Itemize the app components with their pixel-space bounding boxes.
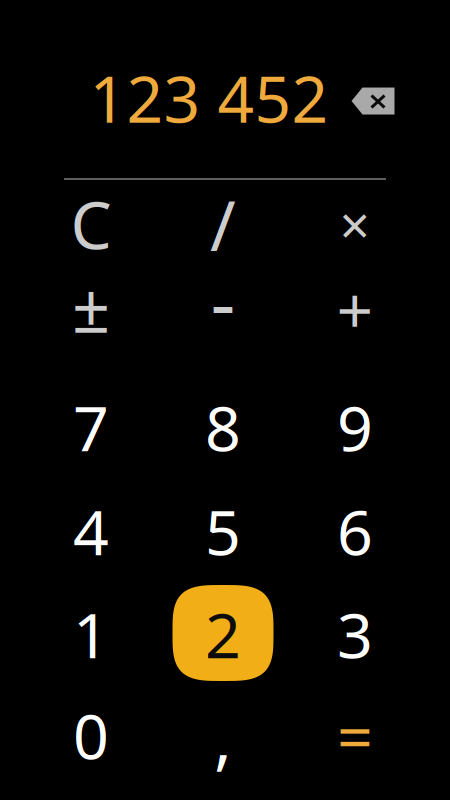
button[interactable]: 5 (157, 483, 289, 583)
button[interactable]: 9 (289, 379, 421, 479)
button[interactable]: 1 (25, 586, 157, 686)
button[interactable]: 7 (25, 379, 157, 479)
staticText: × (339, 189, 370, 259)
button[interactable]: / (157, 181, 289, 267)
button[interactable]: × (289, 181, 421, 267)
button[interactable]: , (157, 687, 289, 787)
staticText: 123 452 (89, 55, 328, 140)
staticText: 7 (73, 385, 109, 469)
button[interactable]: 3 (289, 586, 421, 686)
staticText: - (210, 250, 235, 352)
staticText: 5 (205, 489, 241, 573)
button[interactable]: = (289, 687, 421, 787)
staticText: 3 (337, 592, 373, 676)
staticText: C (70, 181, 111, 267)
button[interactable]: 2 (157, 586, 289, 686)
staticText: 1 (73, 592, 109, 676)
staticText: + (336, 266, 373, 351)
staticText: 8 (205, 385, 241, 469)
button[interactable]: 8 (157, 379, 289, 479)
staticText: 9 (337, 385, 373, 469)
button[interactable]: 4 (25, 483, 157, 583)
button[interactable]: 0 (25, 687, 157, 787)
staticText: 6 (337, 489, 373, 573)
staticText: = (337, 694, 373, 778)
staticText: , (214, 693, 232, 781)
staticText: 0 (73, 693, 109, 777)
staticText: ± (72, 263, 110, 351)
button[interactable]: 6 (289, 483, 421, 583)
button[interactable]: C (25, 181, 157, 267)
button[interactable]: - (157, 266, 289, 352)
staticText: / (210, 178, 236, 270)
button[interactable]: + (289, 266, 421, 352)
button[interactable]: ± (25, 266, 157, 352)
staticText: 4 (73, 489, 109, 573)
staticText: 2 (205, 592, 241, 676)
button[interactable]: Delete (340, 72, 406, 130)
